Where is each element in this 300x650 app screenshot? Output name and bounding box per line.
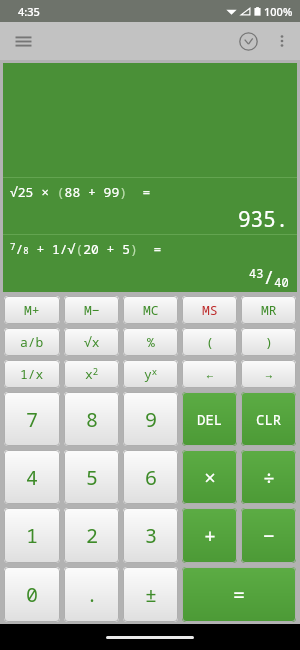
button[interactable]: History [229, 22, 267, 60]
button[interactable]: yx [123, 360, 178, 388]
button[interactable]: = [182, 567, 296, 622]
button[interactable]: M− [64, 296, 119, 324]
button[interactable]: 4 [4, 450, 60, 504]
button[interactable]: DEL [182, 392, 237, 446]
button[interactable]: MS [182, 296, 237, 324]
button[interactable]: Left [182, 360, 237, 388]
staticText: M− [84, 301, 100, 319]
button[interactable]: + [182, 508, 237, 563]
button[interactable]: 1/x [4, 360, 60, 388]
button[interactable]: 1 [4, 508, 60, 563]
staticText: 1/x [20, 365, 44, 383]
staticText: ± [145, 581, 157, 608]
staticText: MS [202, 301, 218, 319]
button[interactable]: 3 [123, 508, 178, 563]
staticText: CLR [256, 410, 282, 429]
staticText: ← [206, 365, 214, 383]
staticText: M+ [24, 301, 40, 319]
button[interactable]: ÷ [241, 450, 296, 504]
staticText: . [86, 581, 98, 608]
staticText: √x [84, 333, 100, 351]
staticText: yx [144, 365, 158, 383]
button[interactable]: ( [182, 328, 237, 356]
staticText: 4:35 [18, 4, 40, 19]
button[interactable]: 9 [123, 392, 178, 446]
staticText: 43/40 [249, 265, 289, 290]
staticText: 5 [86, 464, 98, 491]
staticText: MR [261, 301, 277, 319]
staticText: + [204, 522, 216, 549]
button[interactable]: x2 [64, 360, 119, 388]
staticText: = [233, 581, 245, 608]
button[interactable]: 5 [64, 450, 119, 504]
button[interactable]: % [123, 328, 178, 356]
button[interactable]: √x [64, 328, 119, 356]
button[interactable]: MC [123, 296, 178, 324]
staticText: × [204, 464, 216, 491]
button[interactable]: × [182, 450, 237, 504]
staticText: 4 [26, 464, 38, 491]
staticText: 2 [86, 522, 98, 549]
staticText: 0 [26, 581, 38, 608]
staticText: 3 [145, 522, 157, 549]
staticText: √25 × (88 + 99) = [10, 183, 151, 201]
staticText: MC [143, 301, 159, 319]
staticText: DEL [197, 410, 223, 429]
button[interactable]: Menu [4, 22, 42, 60]
staticText: − [263, 522, 275, 549]
staticText: 9 [145, 406, 157, 433]
button[interactable]: CLR [241, 392, 296, 446]
staticText: ÷ [263, 464, 275, 491]
staticText: a/b [20, 333, 44, 351]
staticText: 7 [26, 406, 38, 433]
button[interactable]: a/b [4, 328, 60, 356]
staticText: 100% [264, 4, 293, 19]
staticText: 7/8 + 1/√(20 + 5) = [10, 240, 162, 258]
button[interactable]: MR [241, 296, 296, 324]
staticText: x2 [85, 365, 99, 383]
button[interactable]: 8 [64, 392, 119, 446]
button[interactable]: Right [241, 360, 296, 388]
staticText: 1 [26, 522, 38, 549]
button[interactable]: ) [241, 328, 296, 356]
staticText: ( [206, 333, 214, 351]
staticText: % [147, 333, 155, 351]
button[interactable]: 6 [123, 450, 178, 504]
button[interactable]: 7 [4, 392, 60, 446]
button[interactable]: 2 [64, 508, 119, 563]
button[interactable]: M+ [4, 296, 60, 324]
button[interactable]: More options [267, 26, 297, 56]
button[interactable]: ± [123, 567, 178, 622]
staticText: → [265, 365, 273, 383]
button[interactable]: 0 [4, 567, 60, 622]
staticText: ) [265, 333, 273, 351]
staticText: 8 [86, 406, 98, 433]
button[interactable]: − [241, 508, 296, 563]
button[interactable]: . [64, 567, 119, 622]
staticText: 6 [145, 464, 157, 491]
staticText: 935. [238, 205, 289, 234]
